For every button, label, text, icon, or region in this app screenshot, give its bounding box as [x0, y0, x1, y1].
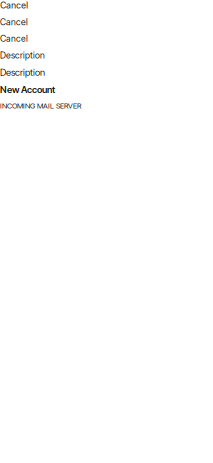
staticText: Cancel — [0, 0, 28, 11]
staticText: Cancel — [0, 17, 28, 27]
staticText: INCOMING MAIL SERVER — [0, 101, 81, 110]
staticText: New Account — [0, 84, 55, 95]
staticText: Description — [0, 67, 45, 78]
staticText: Description — [0, 50, 45, 60]
staticText: Cancel — [0, 33, 28, 44]
